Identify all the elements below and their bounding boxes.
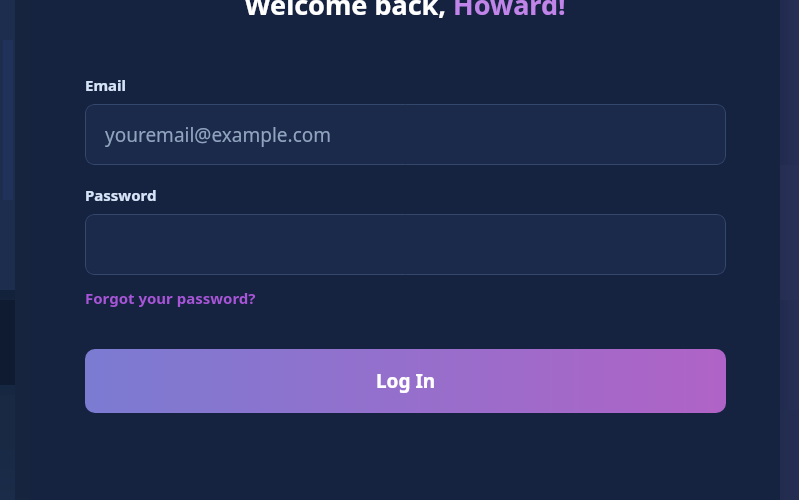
staticText: Welcome back, Howard! [30,0,780,23]
button[interactable] [85,214,726,275]
staticText: youremail@example.com [105,122,332,148]
button[interactable]: Forgot your password? [85,288,256,308]
staticText: Log In [376,368,436,394]
staticText: Email [85,75,126,95]
button[interactable]: Log In [85,349,726,413]
button[interactable]: youremail@example.com [85,104,726,165]
staticText: Password [85,185,157,205]
staticText: Forgot your password? [85,288,256,308]
